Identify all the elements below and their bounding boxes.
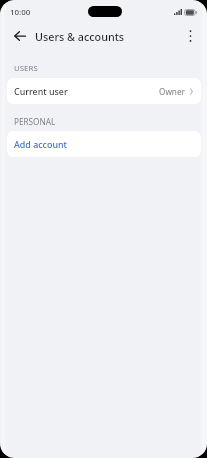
- staticText: 10:00: [10, 7, 31, 18]
- button[interactable]: More options: [178, 24, 202, 48]
- staticText: USERS: [14, 63, 38, 74]
- staticText: PERSONAL: [14, 116, 56, 127]
- button[interactable]: Add account: [7, 131, 201, 157]
- button[interactable]: Back: [8, 24, 32, 48]
- staticText: Users & accounts: [35, 29, 125, 44]
- staticText: Owner: [159, 86, 185, 97]
- button[interactable]: Current user: [7, 78, 201, 104]
- staticText: Current user: [14, 85, 68, 97]
- staticText: Add account: [14, 138, 67, 150]
